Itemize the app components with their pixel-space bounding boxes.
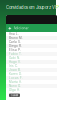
staticText: Carla S.: [9, 40, 21, 44]
staticText: Lucas F.: [9, 76, 23, 80]
staticText: Fabio T.: [9, 52, 22, 56]
button[interactable]: Fabio T.: [6, 52, 57, 56]
button[interactable]: Ana L.: [6, 32, 57, 36]
button[interactable]: Diego R.: [6, 44, 57, 48]
staticText: Olga H.: [9, 88, 20, 92]
staticText: Bruno M.: [9, 36, 23, 40]
button[interactable]: Joao B.: [6, 68, 57, 72]
staticText: Iris C.: [9, 64, 18, 68]
button[interactable]: Nuno G.: [6, 84, 57, 88]
button[interactable]: Olga H.: [6, 88, 57, 92]
button[interactable]: Elisa P.: [6, 48, 57, 52]
button[interactable]: +: [6, 24, 57, 32]
staticText: Gabi N.: [9, 56, 20, 60]
staticText: +: [8, 25, 12, 31]
button[interactable]: Lucas F.: [6, 76, 57, 80]
staticText: Karen D.: [9, 72, 22, 76]
button[interactable]: Iris C.: [6, 64, 57, 68]
button[interactable]: Karen D.: [6, 72, 57, 76]
staticText: Salvar: [11, 94, 18, 97]
button[interactable]: Carla S.: [6, 40, 57, 44]
button[interactable]: Gabi N.: [6, 56, 57, 60]
staticText: Convidados em Jouporz VIP: [6, 5, 59, 10]
button[interactable]: Salvar: [9, 93, 20, 97]
staticText: Diego R.: [9, 44, 22, 48]
staticText: Marta A.: [9, 80, 22, 84]
staticText: Joao B.: [9, 68, 21, 72]
staticText: Nuno G.: [9, 84, 21, 88]
staticText: Hugo V.: [9, 60, 21, 64]
staticText: Elisa P.: [9, 48, 21, 52]
staticText: Ana L.: [9, 32, 19, 36]
staticText: Adicionar: [13, 26, 28, 30]
button[interactable]: Bruno M.: [6, 36, 57, 40]
button[interactable]: Hugo V.: [6, 60, 57, 64]
button[interactable]: Marta A.: [6, 80, 57, 84]
